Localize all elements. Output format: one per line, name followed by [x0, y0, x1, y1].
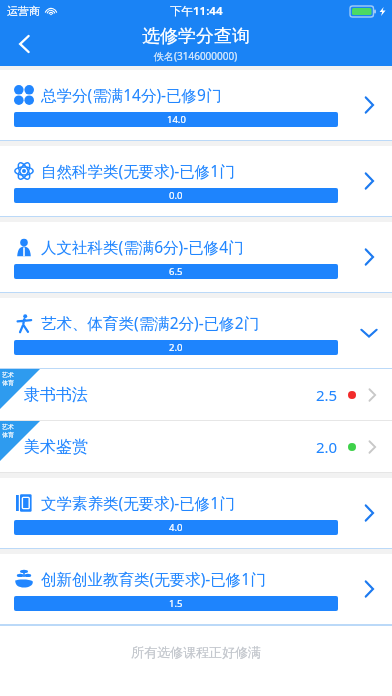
button[interactable]: 人文社科类(需满6分)-已修4门 [0, 222, 392, 292]
button[interactable]: 艺术、体育类(需满2分)-已修2门 [0, 298, 392, 368]
button[interactable]: 文学素养类(无要求)-已修1门 [0, 478, 392, 548]
staticText: 4.0 [169, 521, 183, 534]
staticText: 2.5 [316, 385, 338, 405]
staticText: 14.0 [167, 113, 186, 126]
button[interactable]: 创新创业教育类(无要求)-已修1门 [0, 554, 392, 624]
button[interactable]: 自然科学类(无要求)-已修1门 [0, 146, 392, 216]
button[interactable]: Expand [346, 70, 392, 140]
staticText: 自然科学类(无要求)-已修1门 [41, 160, 235, 181]
button[interactable]: Collapse [346, 298, 392, 368]
staticText: 美术鉴赏 [24, 437, 316, 457]
button[interactable]: 艺术 [0, 369, 392, 421]
staticText: 人文社科类(需满6分)-已修4门 [41, 236, 244, 257]
staticText: 佚名(3146000000) [154, 49, 238, 63]
staticText: 艺术 [2, 371, 14, 379]
staticText: 0.0 [169, 189, 183, 202]
staticText: 体育 [2, 379, 14, 387]
button[interactable]: Expand [346, 554, 392, 624]
button[interactable]: Expand [346, 222, 392, 292]
staticText: 6.5 [169, 265, 183, 278]
staticText: 隶书书法 [24, 385, 316, 405]
staticText: 总学分(需满14分)-已修9门 [41, 84, 222, 105]
button[interactable]: Back [4, 23, 46, 65]
staticText: 文学素养类(无要求)-已修1门 [41, 492, 235, 513]
staticText: 艺术 [2, 423, 14, 431]
staticText: 1.5 [169, 597, 183, 610]
button[interactable]: 总学分(需满14分)-已修9门 [0, 70, 392, 140]
button[interactable]: 艺术 [0, 421, 392, 473]
staticText: 选修学分查询 [142, 25, 250, 48]
staticText: 2.0 [169, 341, 183, 354]
staticText: 创新创业教育类(无要求)-已修1门 [41, 568, 266, 589]
staticText: 下午11:44 [170, 3, 223, 19]
staticText: 艺术、体育类(需满2分)-已修2门 [41, 312, 260, 333]
staticText: 2.0 [316, 437, 338, 457]
staticText: 运营商 [7, 4, 40, 18]
button[interactable]: Expand [346, 146, 392, 216]
staticText: 所有选修课程正好修满 [131, 644, 261, 660]
button[interactable]: Expand [346, 478, 392, 548]
staticText: 体育 [2, 431, 14, 439]
